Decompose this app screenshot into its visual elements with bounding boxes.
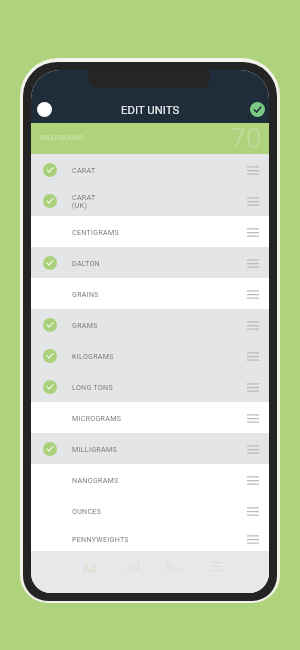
staticText: CARAT (72, 193, 96, 201)
button[interactable]: Reorder OUNCES (242, 500, 264, 522)
button[interactable]: PENNYWEIGHTS (31, 526, 269, 551)
staticText: PENNYWEIGHTS (72, 535, 129, 543)
staticText: (UK) (72, 201, 88, 209)
staticText: DALTON (72, 259, 100, 267)
button[interactable]: KILOGRAMS (31, 340, 269, 371)
staticText: 70 (231, 123, 261, 154)
button[interactable]: Reorder CARAT (242, 159, 264, 181)
button[interactable]: Reorder GRAMS (242, 314, 264, 336)
staticText: MILLIGRAMS (72, 445, 117, 453)
button[interactable]: Reorder DALTON (242, 252, 264, 274)
button[interactable]: NANOGRAMS (31, 464, 269, 495)
staticText: MICROGRAMS (72, 414, 122, 422)
button[interactable]: OUNCES (31, 495, 269, 526)
staticText: GRAINS (72, 290, 99, 298)
button[interactable]: CENTIGRAMS (31, 216, 269, 247)
staticText: KILOGRAMS (72, 352, 114, 360)
button[interactable]: Back (34, 99, 54, 119)
button[interactable]: Reorder MILLIGRAMS (242, 438, 264, 460)
button[interactable]: Reorder CENTIGRAMS (242, 221, 264, 243)
staticText: AZ (83, 562, 97, 575)
button[interactable]: Reorder LONG TONS (242, 376, 264, 398)
button[interactable]: Reorder NANOGRAMS (242, 469, 264, 491)
staticText: OUNCES (72, 507, 102, 515)
staticText: EDIT UNITS (121, 103, 180, 116)
button[interactable]: GRAINS (31, 278, 269, 309)
button[interactable]: Reorder CARAT (242, 190, 264, 212)
button[interactable]: KILOGRAMS (31, 123, 269, 154)
staticText: KILOGRAMS (40, 133, 84, 142)
staticText: GRAMS (72, 321, 98, 329)
staticText: LONG TONS (72, 383, 113, 391)
staticText: CARAT (72, 166, 96, 174)
button[interactable]: Reorder KILOGRAMS (242, 345, 264, 367)
button[interactable]: Sort alphabetically (69, 551, 111, 593)
button[interactable]: GRAMS (31, 309, 269, 340)
button[interactable]: CARAT (31, 185, 269, 216)
button[interactable]: Reorder PENNYWEIGHTS (242, 528, 264, 550)
button[interactable]: Save units (247, 99, 267, 119)
button[interactable]: Reorder MICROGRAMS (242, 407, 264, 429)
button[interactable]: CARAT (31, 154, 269, 185)
button[interactable]: MILLIGRAMS (31, 433, 269, 464)
staticText: CENTIGRAMS (72, 228, 120, 236)
button[interactable]: MICROGRAMS (31, 402, 269, 433)
button[interactable]: Reorder GRAINS (242, 283, 264, 305)
staticText: NANOGRAMS (72, 476, 119, 484)
button[interactable]: DALTON (31, 247, 269, 278)
button[interactable]: LONG TONS (31, 371, 269, 402)
